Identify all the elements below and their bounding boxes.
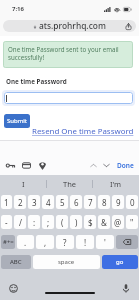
staticText: , <box>44 237 47 248</box>
staticText: - <box>5 217 8 228</box>
staticText: One time Password sent to your email suc… <box>8 45 119 62</box>
staticText: Done <box>117 161 134 170</box>
button[interactable]: The <box>47 175 93 192</box>
staticText: ats.prohrhq.com <box>39 20 106 31</box>
button[interactable]: ats.prohrhq.com <box>3 20 136 32</box>
staticText: 7 <box>88 197 93 208</box>
button[interactable]: Done <box>116 160 135 171</box>
staticText: $ <box>88 217 93 228</box>
button[interactable]: ' <box>96 235 114 249</box>
staticText: go <box>116 258 124 266</box>
button[interactable]: ! <box>76 235 94 249</box>
button[interactable]: 8 <box>98 195 110 209</box>
staticText: ' <box>104 237 106 248</box>
button[interactable]: Backspace <box>116 235 138 249</box>
staticText: I'm <box>110 179 122 189</box>
staticText: : <box>33 217 36 228</box>
button[interactable]: space <box>33 255 100 269</box>
button[interactable]: ; <box>42 215 54 229</box>
staticText: ) <box>75 217 78 228</box>
button[interactable]: 9 <box>112 195 124 209</box>
staticText: ; <box>47 217 50 228</box>
staticText: 7:16 <box>12 5 24 13</box>
staticText: 0 <box>130 197 135 208</box>
staticText: ! <box>84 237 87 248</box>
staticText: ABC <box>10 258 22 266</box>
staticText: space <box>58 258 75 266</box>
staticText: & <box>101 217 107 228</box>
button[interactable]: . <box>17 235 34 249</box>
button[interactable]: 6 <box>70 195 82 209</box>
button[interactable]: ? <box>56 235 74 249</box>
button[interactable]: Credit cards <box>20 159 32 171</box>
button[interactable]: Location <box>36 159 48 171</box>
staticText: " <box>130 217 134 228</box>
button[interactable]: Passwords <box>4 159 16 171</box>
staticText: 5 <box>60 197 65 208</box>
button[interactable]: Next field <box>101 160 112 171</box>
button[interactable]: @ <box>112 215 124 229</box>
button[interactable]: Previous field <box>88 160 99 171</box>
button[interactable]: ( <box>56 215 68 229</box>
button[interactable]: 0 <box>126 195 138 209</box>
staticText: 8 <box>102 197 107 208</box>
button[interactable]: 4 <box>42 195 54 209</box>
button[interactable]: $ <box>84 215 96 229</box>
button[interactable]: " <box>126 215 138 229</box>
staticText: #+= <box>3 238 14 246</box>
staticText: I <box>22 179 25 189</box>
staticText: ( <box>61 217 64 228</box>
staticText: 3 <box>32 197 37 208</box>
button[interactable]: #+= <box>1 235 15 249</box>
button[interactable]: & <box>98 215 110 229</box>
button[interactable]: I'm <box>93 175 139 192</box>
staticText: The <box>63 179 77 189</box>
button[interactable]: - <box>1 215 12 229</box>
button[interactable]: Submit <box>4 114 30 128</box>
button[interactable]: 5 <box>56 195 68 209</box>
button[interactable]: I <box>0 175 47 192</box>
staticText: 2 <box>18 197 23 208</box>
button[interactable]: : <box>28 215 40 229</box>
staticText: 9 <box>116 197 121 208</box>
button[interactable]: ) <box>70 215 82 229</box>
button[interactable]: Resend One time Password <box>32 126 134 137</box>
button[interactable]: Emoji <box>8 283 19 294</box>
button[interactable]: go <box>102 255 138 269</box>
button[interactable]: Dictation <box>120 283 131 294</box>
staticText: . <box>24 237 27 248</box>
button[interactable]: Share <box>123 21 133 31</box>
button[interactable]: ABC <box>1 255 31 269</box>
staticText: / <box>19 217 22 228</box>
button[interactable]: , <box>36 235 54 249</box>
button[interactable]: 3 <box>28 195 40 209</box>
staticText: One time Password <box>6 77 67 86</box>
staticText: 4 <box>46 197 51 208</box>
staticText: 1 <box>4 197 9 208</box>
button[interactable]: 2 <box>14 195 26 209</box>
staticText: @ <box>114 217 122 228</box>
button[interactable]: / <box>14 215 26 229</box>
button[interactable]: 1 <box>1 195 12 209</box>
button[interactable] <box>4 92 133 104</box>
button[interactable]: 7 <box>84 195 96 209</box>
staticText: Submit <box>7 117 28 125</box>
staticText: ? <box>63 237 67 248</box>
staticText: 6 <box>74 197 79 208</box>
